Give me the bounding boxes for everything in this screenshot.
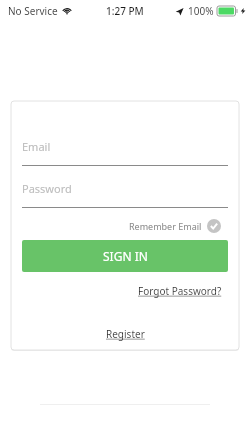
staticText: Password [22,181,72,196]
staticText: 1:27 PM [106,4,144,18]
staticText: No Service [8,4,58,18]
button[interactable]: Register [102,325,149,343]
button[interactable]: Remember Email [129,214,221,238]
staticText: SIGN IN [103,248,148,264]
staticText: Remember Email [129,220,202,232]
staticText: Forgot Password? [138,284,222,298]
staticText: 100% [188,4,214,18]
staticText: Email [22,139,51,154]
staticText: Register [106,327,145,341]
button[interactable]: Forgot Password? [136,282,224,300]
button[interactable]: SIGN IN [22,240,228,272]
